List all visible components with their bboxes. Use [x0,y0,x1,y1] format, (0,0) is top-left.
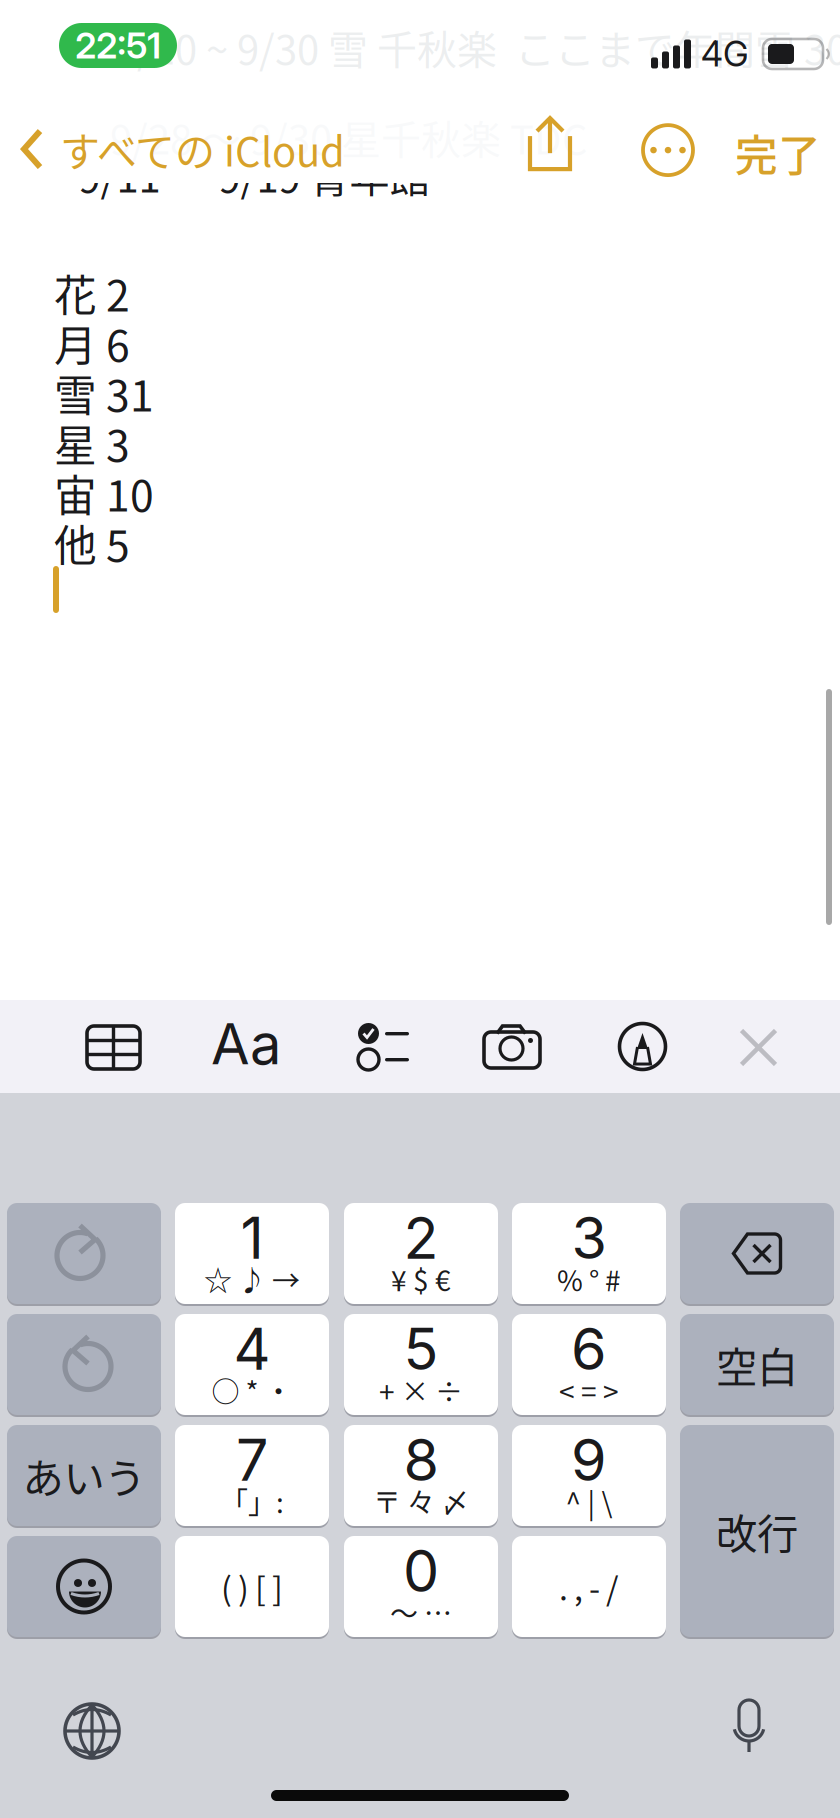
staticText: 完了 [735,122,821,184]
staticText: 宙 10 [54,462,154,524]
button[interactable]: Undo [7,1314,161,1415]
staticText: % ° # [557,1259,621,1299]
button[interactable]: Close [721,1010,796,1085]
staticText: 星 3 [54,412,130,474]
staticText: 雪 31 [54,362,154,424]
staticText: 改行 [716,1501,798,1561]
staticText: あいう [22,1446,145,1505]
staticText: < = > [559,1370,619,1410]
button[interactable]: 空白 [680,1314,834,1415]
button[interactable]: . , - / [512,1536,666,1637]
staticText: 「」: [220,1481,284,1521]
button[interactable]: Table [69,1008,158,1087]
button[interactable]: More [628,110,708,190]
button[interactable]: Delete [680,1203,834,1304]
staticText: 7 [236,1425,268,1495]
staticText: 9 [571,1425,607,1495]
button[interactable]: 改行 [680,1425,834,1637]
staticText: 4G [701,33,749,75]
staticText: 9/11 〜 9/19 青年館 [78,146,429,204]
staticText: すべての iCloud [60,120,345,178]
staticText: 5 [403,1314,438,1384]
staticText: 8 [403,1425,438,1495]
staticText: Aa [211,1010,281,1078]
staticText: ☆ ♪ → [204,1259,300,1299]
button[interactable]: Share [514,102,586,185]
staticText: 〒 々 〆 [373,1481,469,1521]
button[interactable]: 2 [344,1203,498,1304]
staticText: 4 [233,1314,270,1384]
button[interactable]: あいう [7,1425,161,1526]
button[interactable]: 6 [512,1314,666,1415]
staticText: 3 [571,1203,606,1273]
button[interactable]: 8 [344,1425,498,1526]
staticText: . , - / [559,1563,619,1610]
staticText: 22:51 [75,24,161,67]
staticText: ( ) [ ] [221,1563,283,1610]
staticText: 他 5 [54,512,130,574]
staticText: 1 [240,1203,263,1273]
button[interactable]: Dictate [711,1684,787,1772]
button[interactable]: ( ) [ ] [175,1536,329,1637]
button[interactable]: 7 [175,1425,329,1526]
button[interactable]: すべての iCloud [12,106,353,192]
button[interactable]: Redo [7,1203,161,1304]
button[interactable]: Emoji [7,1536,161,1637]
staticText: 月 6 [54,312,130,374]
staticText: 9/10 ~ 9/30 雪 千秋楽 ここまで年間雪 30 [115,18,840,76]
button[interactable]: Checklist [340,1005,427,1088]
staticText: ○ * ・ [211,1370,292,1410]
button[interactable]: 5 [344,1314,498,1415]
button[interactable]: 完了 [721,108,835,198]
button[interactable]: 0 [344,1536,498,1637]
staticText: 0 [403,1536,439,1606]
button[interactable]: 1 [175,1203,329,1304]
staticText: 花 2 [54,262,130,324]
button[interactable]: Format [190,1000,302,1088]
staticText: 9/28 〜 9/30 星千秋楽 TDC [110,108,588,166]
button[interactable]: 9 [512,1425,666,1526]
staticText: 6 [571,1314,607,1384]
staticText: ^ | \ [565,1481,612,1521]
staticText: 空白 [716,1335,798,1394]
staticText: 〜 … [390,1592,452,1632]
button[interactable]: Switch keyboard [48,1687,136,1775]
staticText: 2 [403,1203,438,1273]
staticText: ¥ $ € [391,1259,451,1299]
button[interactable]: Markup [601,1005,684,1088]
button[interactable]: 3 [512,1203,666,1304]
button[interactable]: 4 [175,1314,329,1415]
staticText: + × ÷ [379,1370,463,1410]
button[interactable]: Camera [466,1006,558,1086]
